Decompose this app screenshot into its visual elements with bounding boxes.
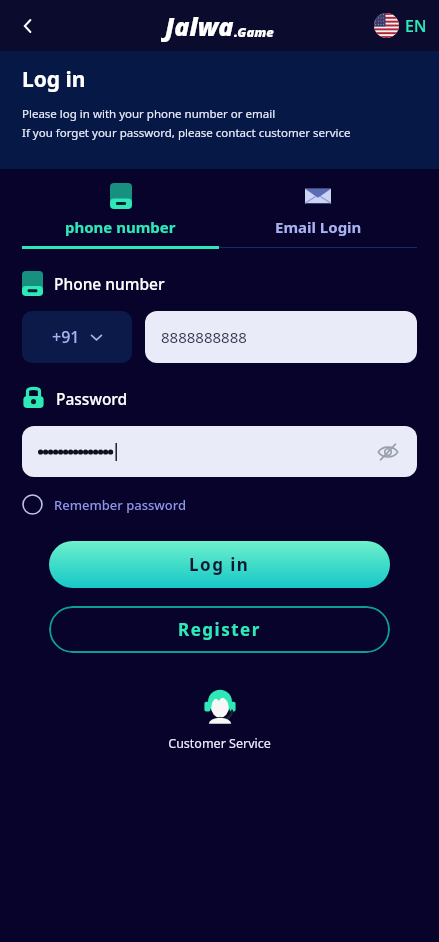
staticText: EN — [405, 15, 427, 37]
button[interactable]: Email Login — [219, 183, 417, 237]
staticText: phone number — [65, 217, 176, 237]
staticText: .Game — [234, 23, 274, 41]
staticText: Log in — [22, 65, 86, 94]
button[interactable]: Back — [8, 6, 48, 46]
button[interactable]: Log in — [49, 541, 390, 588]
staticText: If you forget your password, please cont… — [22, 125, 351, 141]
staticText: +91 — [52, 326, 80, 348]
staticText: Log in — [189, 553, 250, 576]
staticText: Email Login — [275, 217, 362, 237]
staticText: 8888888888 — [161, 327, 247, 347]
other: Customer Service — [200, 685, 240, 725]
button[interactable]: 8888888888 — [145, 311, 417, 363]
button[interactable]: Register — [49, 606, 390, 653]
staticText: Jalwa — [165, 9, 234, 43]
button[interactable]: +91 — [22, 311, 132, 363]
button[interactable]: phone number — [22, 183, 219, 237]
staticText: Phone number — [54, 273, 165, 294]
button[interactable]: Show password — [373, 437, 403, 467]
button[interactable]: Language — [374, 13, 427, 38]
staticText: Register — [178, 618, 261, 641]
button[interactable]: Customer Service — [0, 685, 439, 752]
staticText: Remember password — [54, 496, 187, 514]
staticText: Please log in with your phone number or … — [22, 106, 276, 122]
button[interactable]: Remember password — [22, 494, 187, 515]
other: Language — [374, 13, 399, 38]
staticText: Password — [56, 388, 128, 409]
button[interactable]: Show password — [22, 426, 417, 477]
staticText: Customer Service — [168, 735, 271, 752]
